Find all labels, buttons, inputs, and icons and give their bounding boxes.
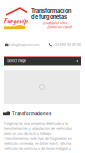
staticText: Select Page [7,59,26,63]
staticText: ¡Como en casa! [47,25,72,29]
button[interactable]: Select Page [4,56,81,66]
staticText: Transformamos todo tipo de furgonetas en [4,136,72,141]
staticText: vehículo vivienda, en taller móvil, ofic… [4,141,72,146]
staticText: Transformación [31,8,71,14]
staticText: para un uso de ocio y trabajo. [4,131,52,136]
staticText: Transformaciones [12,111,51,116]
staticText: info@furgovip.com [9,43,39,47]
staticText: +34 600 00 00 00 [53,43,81,47]
button[interactable]: +34 600 00 00 00 [49,43,81,47]
button[interactable]: info@furgovip.com [5,43,39,47]
staticText: vehículo de servicio o de forma integral… [4,146,71,151]
staticText: de furgonetas [31,14,67,20]
staticText: Furgovip [3,16,27,26]
staticText: ¡cualquier sitio… [43,21,70,25]
staticText: transformación y adaptación de vehículos [4,126,72,131]
staticText: Furgovip es una empresa dedicada a la [4,121,68,126]
